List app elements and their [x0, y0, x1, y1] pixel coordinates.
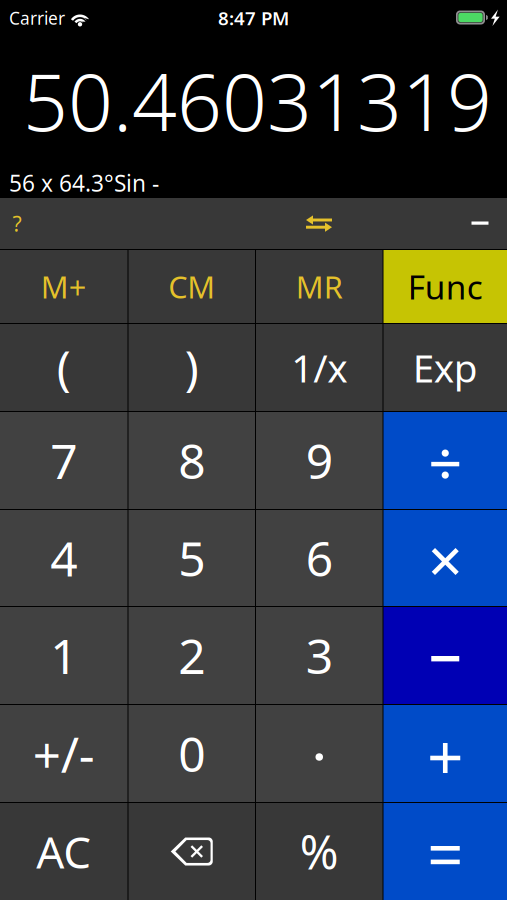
staticText: 8: [178, 429, 205, 492]
staticText: 5: [178, 526, 205, 590]
staticText: Func: [408, 264, 483, 309]
button[interactable]: Equals: [383, 803, 507, 900]
button[interactable]: MR: [256, 250, 382, 323]
button[interactable]: (: [0, 324, 127, 411]
staticText: 9: [306, 429, 333, 492]
button[interactable]: AC: [0, 803, 127, 900]
button[interactable]: 1/x: [256, 324, 382, 411]
button[interactable]: Subtract: [383, 607, 507, 704]
button[interactable]: %: [256, 803, 382, 900]
button[interactable]: 2: [128, 607, 255, 704]
staticText: ): [185, 336, 199, 398]
staticText: MR: [296, 266, 343, 307]
button[interactable]: Multiply: [383, 510, 507, 606]
button[interactable]: Help: [0, 198, 34, 249]
staticText: 1/x: [291, 342, 347, 393]
button[interactable]: 5: [128, 510, 255, 606]
button[interactable]: 6: [256, 510, 382, 606]
staticText: M+: [41, 266, 87, 307]
staticText: 6: [306, 526, 333, 590]
button[interactable]: 8: [128, 412, 255, 509]
staticText: Exp: [413, 342, 478, 393]
button[interactable]: Add: [383, 705, 507, 802]
button[interactable]: 3: [256, 607, 382, 704]
staticText: (: [57, 336, 71, 398]
staticText: 0: [178, 722, 205, 785]
button[interactable]: M+: [0, 250, 127, 323]
button[interactable]: 7: [0, 412, 127, 509]
staticText: 1: [50, 624, 77, 687]
button[interactable]: ): [128, 324, 255, 411]
staticText: 3: [306, 624, 333, 687]
staticText: 56 x 64.3°Sin -: [9, 168, 159, 198]
button[interactable]: 9: [256, 412, 382, 509]
staticText: +/-: [33, 721, 95, 786]
button[interactable]: 4: [0, 510, 127, 606]
button[interactable]: +/-: [0, 705, 127, 802]
button[interactable]: 1: [0, 607, 127, 704]
staticText: 2: [178, 624, 205, 687]
button[interactable]: 0: [128, 705, 255, 802]
staticText: Carrier: [9, 6, 65, 29]
staticText: 4: [50, 526, 77, 590]
staticText: 50.46031319: [23, 48, 492, 153]
button[interactable]: Swap operands: [292, 198, 346, 249]
staticText: CM: [168, 266, 215, 307]
staticText: ?: [12, 209, 21, 238]
button[interactable]: Decimal point: [256, 705, 382, 802]
button[interactable]: Exp: [383, 324, 507, 411]
button[interactable]: Divide: [383, 412, 507, 509]
staticText: 7: [50, 429, 77, 492]
button[interactable]: CM: [128, 250, 255, 323]
staticText: %: [300, 820, 339, 882]
button[interactable]: Hide keyboard: [458, 198, 502, 249]
button[interactable]: Delete: [128, 803, 255, 900]
staticText: AC: [36, 822, 91, 881]
staticText: 8:47 PM: [218, 6, 289, 30]
button[interactable]: Func: [383, 250, 507, 323]
